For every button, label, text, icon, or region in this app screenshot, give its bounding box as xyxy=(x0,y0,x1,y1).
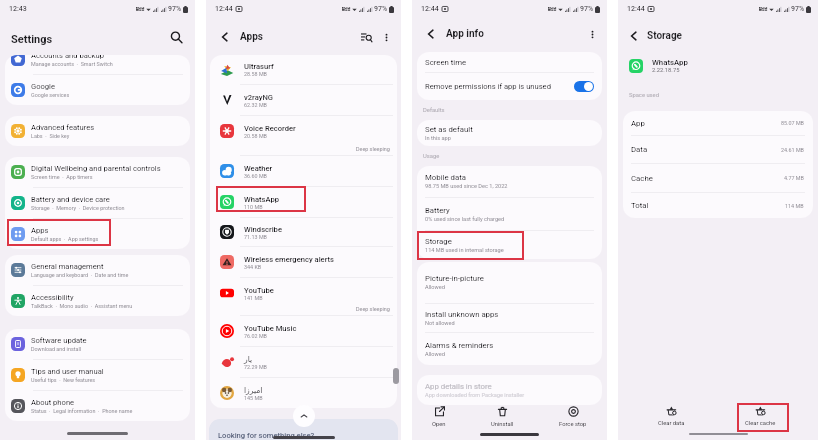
button[interactable]: General management xyxy=(5,255,190,285)
button[interactable]: Collapse xyxy=(293,405,315,427)
staticText: Battery xyxy=(425,206,450,215)
staticText: Voice Recorder xyxy=(244,124,296,133)
staticText: Ultrasurf xyxy=(244,62,274,71)
staticText: 85.07 MB xyxy=(781,120,804,126)
button[interactable]: Mobile data xyxy=(417,166,602,197)
button[interactable]: یار xyxy=(210,347,397,377)
staticText: 0% used since last fully charged xyxy=(425,216,505,223)
button[interactable]: Back xyxy=(218,30,232,44)
staticText: Storage xyxy=(425,237,452,246)
staticText: Set as default xyxy=(425,125,473,134)
staticText: 145 MB xyxy=(244,395,263,401)
staticText: Looking for something else? xyxy=(218,431,315,440)
button[interactable]: Open xyxy=(424,405,454,429)
staticText: 72.29 MB xyxy=(244,364,267,370)
staticText: Install unknown apps xyxy=(425,310,499,319)
button[interactable]: App xyxy=(623,111,813,135)
staticText: Cache xyxy=(631,174,784,183)
button[interactable]: Sort and search xyxy=(359,30,373,44)
button[interactable]: Battery and device care xyxy=(5,188,190,218)
button[interactable]: Uninstall xyxy=(483,405,522,429)
button[interactable]: Accounts and backup xyxy=(5,55,190,74)
staticText: Defaults xyxy=(423,107,445,114)
button[interactable]: Google xyxy=(5,75,190,105)
button[interactable]: App details in store xyxy=(417,375,602,405)
staticText: Advanced features xyxy=(31,123,95,132)
staticText: Alarms & reminders xyxy=(425,341,494,350)
staticText: Google services xyxy=(31,92,70,98)
button[interactable]: Total xyxy=(623,193,813,218)
button[interactable]: YouTube Music xyxy=(210,316,397,346)
button[interactable]: Tips and user manual xyxy=(5,360,190,390)
staticText: Clear cache xyxy=(745,420,776,427)
button[interactable]: Data xyxy=(623,136,813,163)
button[interactable]: Remove permissions if app is unused xyxy=(417,73,602,100)
button[interactable]: Screen time xyxy=(417,52,602,72)
button[interactable]: v2rayNG xyxy=(210,85,397,115)
staticText: Deep sleeping xyxy=(356,306,390,312)
button[interactable]: Accessibility xyxy=(5,286,190,316)
button[interactable]: Apps xyxy=(5,219,190,249)
staticText: Weather xyxy=(244,164,273,173)
staticText: 114 MB used in internal storage xyxy=(425,247,504,254)
staticText: 141 MB xyxy=(244,295,263,301)
button[interactable]: Back xyxy=(627,29,641,43)
button[interactable]: About phone xyxy=(5,391,190,421)
button[interactable]: Set as default xyxy=(417,120,602,146)
button[interactable]: Windscribe xyxy=(210,218,397,246)
button[interactable]: Force stop xyxy=(551,405,595,429)
button[interactable]: Cache xyxy=(623,164,813,192)
button[interactable]: Battery xyxy=(417,198,602,230)
button[interactable]: YouTube xyxy=(210,278,397,315)
staticText: App downloaded from Package installer xyxy=(425,392,525,399)
button[interactable]: Clear data xyxy=(650,404,693,428)
staticText: Mobile data xyxy=(425,173,466,182)
button[interactable]: امیرزا xyxy=(210,378,397,408)
staticText: WhatsApp xyxy=(244,195,279,204)
staticText: Apps xyxy=(31,226,49,235)
staticText: 114 MB xyxy=(785,203,804,209)
staticText: 97% xyxy=(168,5,182,13)
button[interactable]: Software update xyxy=(5,329,190,359)
staticText: 20.58 MB xyxy=(244,133,267,139)
staticText: امیرزا xyxy=(244,386,263,395)
staticText: Apps xyxy=(240,31,263,43)
staticText: Labs · Side key xyxy=(31,133,70,139)
staticText: 36.60 MB xyxy=(244,173,267,179)
staticText: Allowed xyxy=(425,351,445,358)
staticText: Tips and user manual xyxy=(31,367,104,376)
staticText: Language and keyboard · Date and time xyxy=(31,272,129,278)
staticText: Screen time xyxy=(425,58,467,67)
button[interactable]: Advanced features xyxy=(5,116,190,146)
button[interactable]: More options xyxy=(380,31,392,43)
button[interactable]: Weather xyxy=(210,156,397,186)
staticText: 76.02 MB xyxy=(244,333,267,339)
staticText: WhatsApp xyxy=(652,58,688,67)
staticText: Allowed xyxy=(425,284,445,291)
staticText: About phone xyxy=(31,398,75,407)
button[interactable]: Back xyxy=(424,27,438,41)
staticText: 2.22.18.75 xyxy=(652,67,680,74)
staticText: 62.32 MB xyxy=(244,102,267,108)
staticText: Storage xyxy=(647,30,683,42)
button[interactable]: WhatsApp xyxy=(210,187,397,217)
button[interactable]: Storage xyxy=(417,231,602,259)
staticText: App info xyxy=(446,28,484,40)
button[interactable]: Picture-in-picture xyxy=(417,262,602,303)
staticText: 24.61 MB xyxy=(781,147,804,153)
button[interactable]: Clear cache xyxy=(737,404,784,428)
staticText: Data xyxy=(631,145,781,154)
button[interactable]: Ultrasurf xyxy=(210,55,397,84)
button[interactable]: Voice Recorder xyxy=(210,116,397,155)
button[interactable]: Digital Wellbeing and parental controls xyxy=(5,157,190,187)
button[interactable]: Install unknown apps xyxy=(417,304,602,332)
staticText: Battery and device care xyxy=(31,195,110,204)
button[interactable]: Alarms & reminders xyxy=(417,333,602,365)
staticText: Manage accounts · Smart Switch xyxy=(31,61,113,67)
staticText: Windscribe xyxy=(244,225,282,234)
button[interactable]: Wireless emergency alerts xyxy=(210,247,397,277)
staticText: Total xyxy=(631,201,785,210)
button[interactable]: Search xyxy=(167,28,185,46)
staticText: 12:44 xyxy=(421,5,439,13)
button[interactable]: More options xyxy=(586,28,598,40)
